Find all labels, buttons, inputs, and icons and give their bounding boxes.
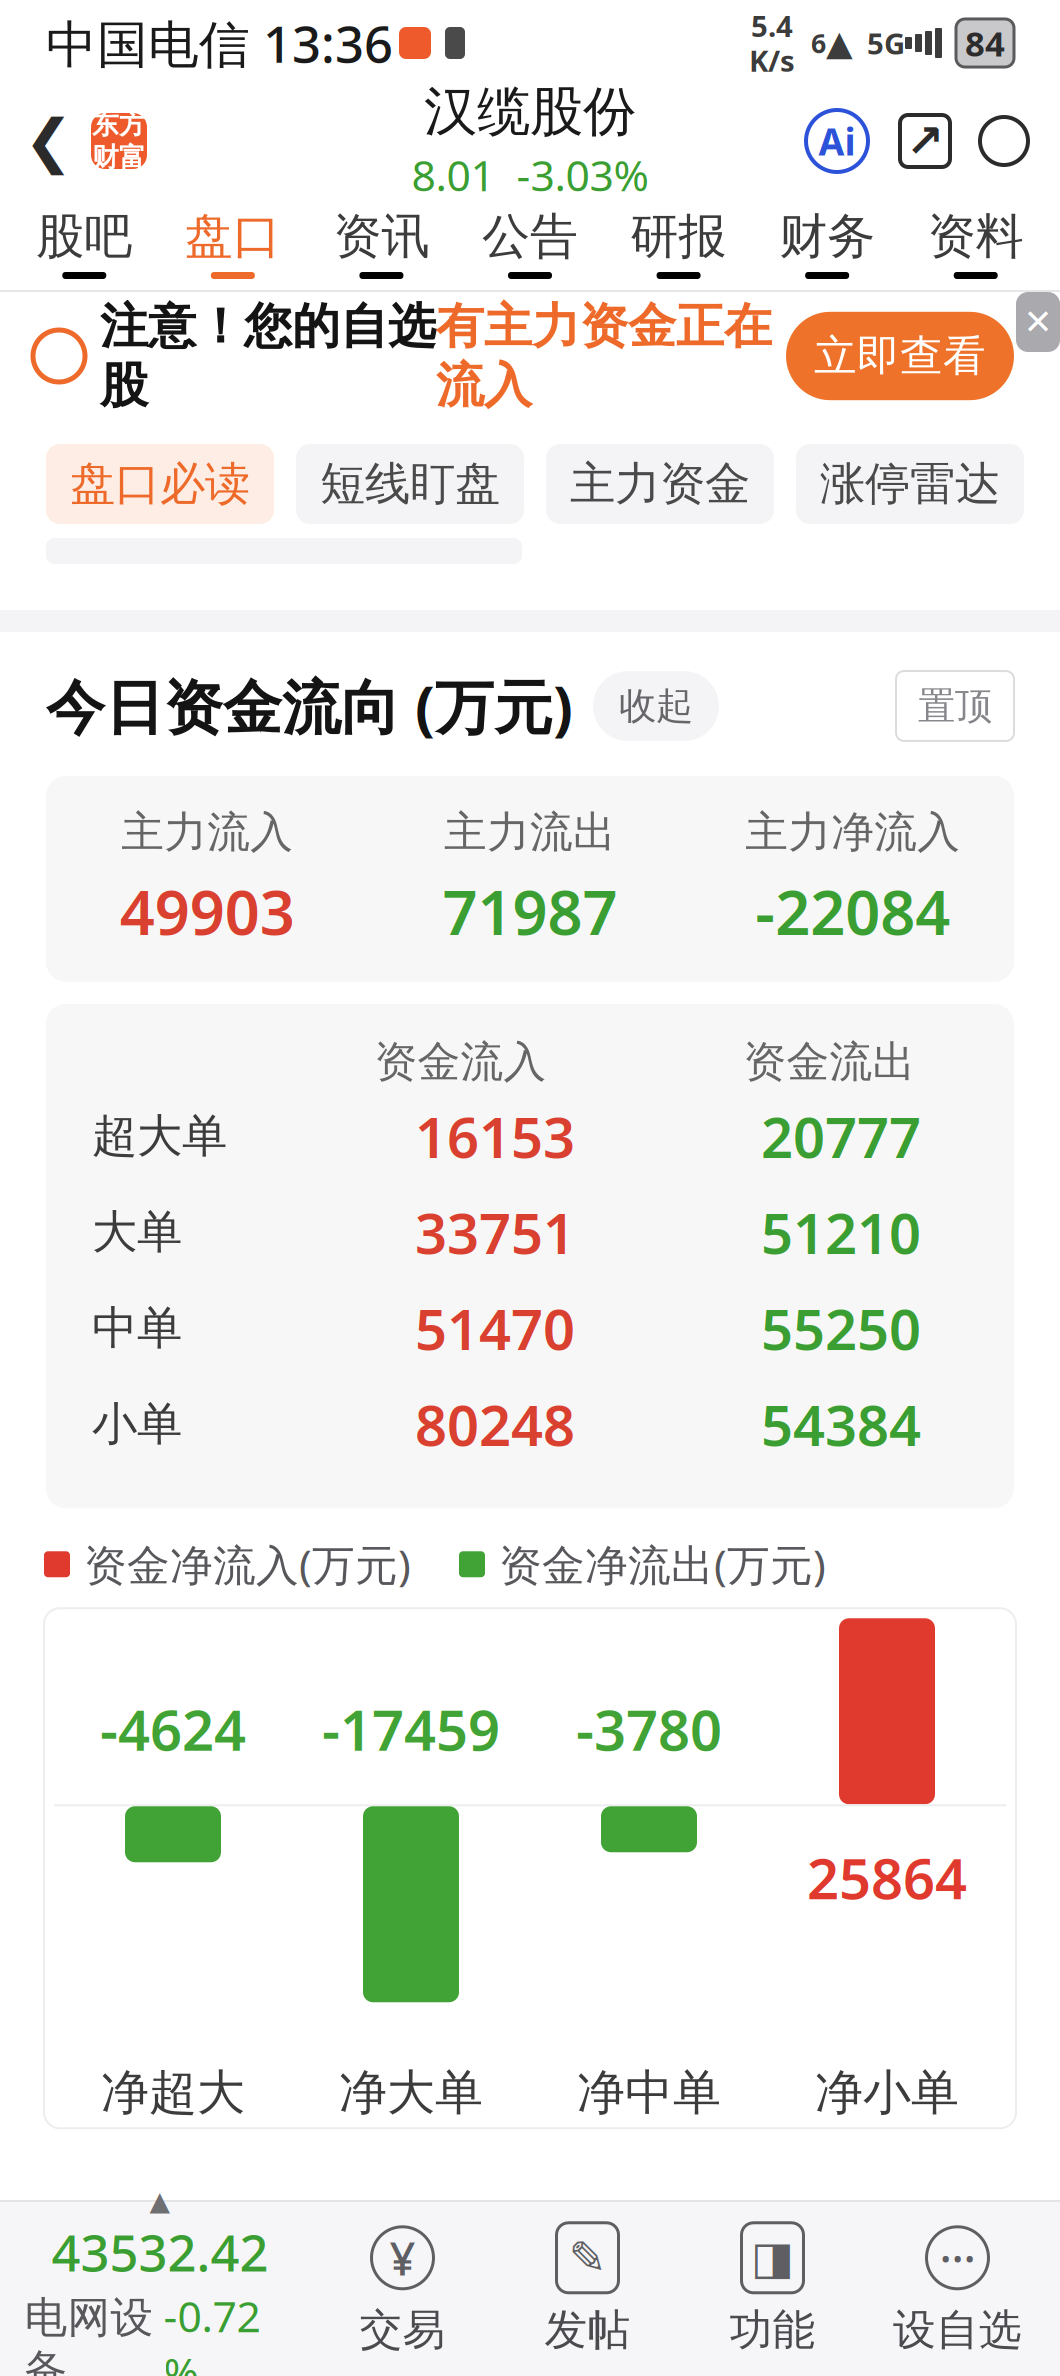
button[interactable]: 资讯 [307, 196, 456, 290]
staticText: 33751 [415, 1195, 575, 1269]
button[interactable]: ¥ [310, 2222, 495, 2356]
staticText: 净小单 [815, 2063, 959, 2122]
staticText: ✎ [568, 2232, 606, 2284]
staticText: 54384 [761, 1387, 921, 1461]
staticText: ↗ [906, 115, 944, 167]
button[interactable]: ▲ [10, 2186, 310, 2376]
staticText: 交易 [359, 2304, 445, 2356]
staticText: 小单 [92, 1396, 182, 1452]
staticText: 资金净流出(万元) [499, 1536, 826, 1593]
staticText: 公告 [482, 207, 578, 266]
button[interactable]: 返回 [0, 86, 171, 196]
staticText: 主力流入 [121, 806, 293, 858]
button[interactable]: 盘口必读 [46, 444, 274, 524]
staticText: 主力资金 [570, 456, 750, 512]
staticText: 49903 [120, 870, 295, 952]
staticText: -17459 [322, 1692, 500, 1766]
staticText: 短线盯盘 [320, 456, 500, 512]
staticText: 20777 [761, 1099, 921, 1173]
staticText: 6 [811, 25, 826, 61]
staticText: 有主力资金正在流入 [436, 297, 772, 415]
staticText: ◨ [751, 2232, 794, 2284]
button[interactable]: 股吧 [10, 196, 159, 290]
staticText: 中单 [92, 1300, 182, 1356]
button[interactable]: 财务 [753, 196, 901, 290]
staticText: 置顶 [918, 683, 992, 729]
staticText: 资金流出 [743, 1036, 915, 1088]
staticText: 净大单 [339, 2063, 483, 2122]
staticText: 资金流入 [374, 1036, 546, 1088]
button[interactable]: ··· [865, 2222, 1050, 2356]
staticText: 净超大 [101, 2063, 245, 2122]
staticText: -3780 [576, 1692, 722, 1766]
button[interactable]: 注意！您的自选股 [0, 292, 1060, 420]
button[interactable]: 短线盯盘 [296, 444, 524, 524]
staticText: 55250 [761, 1291, 921, 1365]
button[interactable]: 主力资金 [546, 444, 774, 524]
staticText: 43532.42 [51, 2218, 268, 2285]
staticText: 净中单 [577, 2063, 721, 2122]
staticText: 发帖 [544, 2304, 630, 2356]
staticText: 资料 [928, 207, 1024, 266]
button[interactable]: ◨ [680, 2222, 865, 2356]
staticText: ❮ [24, 108, 73, 174]
staticText: 5G [867, 23, 905, 62]
staticText: 84 [965, 20, 1005, 66]
staticText: 中国电信 13:36 [46, 9, 393, 77]
staticText: 51210 [761, 1195, 921, 1269]
staticText: 51470 [415, 1291, 575, 1365]
staticText: 25864 [807, 1840, 967, 1915]
button[interactable]: 置顶 [896, 671, 1014, 741]
staticText: ✕ [1023, 302, 1052, 342]
staticText: 汉缆股份 [424, 79, 636, 144]
button[interactable]: 分享 [878, 115, 972, 167]
staticText: 股吧 [36, 207, 132, 266]
button[interactable]: 关闭广告 [1016, 292, 1060, 352]
staticText: 超大单 [92, 1108, 227, 1164]
staticText: ··· [939, 2228, 975, 2288]
staticText: 8.01 [411, 146, 494, 203]
staticText: 收起 [619, 683, 693, 729]
staticText: 研报 [631, 207, 727, 266]
staticText: 盘口必读 [70, 456, 250, 512]
button[interactable]: 搜索 [972, 109, 1060, 173]
button[interactable]: 涨停雷达 [796, 444, 1024, 524]
staticText: ▲ [826, 23, 853, 63]
staticText: ▲ [149, 2186, 170, 2216]
button[interactable]: 公告 [456, 196, 604, 290]
button[interactable]: 盘口 [159, 196, 307, 290]
button[interactable]: 资料 [901, 196, 1050, 290]
button[interactable]: 收起 [593, 671, 719, 741]
staticText: 财富 [92, 141, 146, 174]
staticText: 注意！您的自选股 [100, 297, 436, 415]
staticText: 资讯 [333, 207, 429, 266]
staticText: 71987 [442, 870, 617, 952]
staticText: ¥ [389, 2228, 415, 2288]
staticText: -22084 [755, 870, 950, 952]
staticText: 东方 [92, 108, 146, 141]
button[interactable]: ✎ [495, 2222, 680, 2356]
staticText: 主力流出 [444, 806, 616, 858]
staticText: 16153 [415, 1099, 575, 1173]
staticText: 80248 [415, 1387, 575, 1461]
staticText: -3.03% [516, 146, 648, 203]
staticText: 大单 [92, 1204, 182, 1260]
staticText: 今日资金流向 (万元) [46, 667, 573, 745]
staticText: 电网设备 [24, 2292, 153, 2376]
staticText: 设自选 [893, 2304, 1022, 2356]
staticText: 盘口 [185, 207, 281, 266]
button[interactable]: AI 助手 [796, 110, 878, 172]
staticText: 功能 [729, 2304, 815, 2356]
staticText: 涨停雷达 [820, 456, 1000, 512]
staticText: 主力净流入 [745, 806, 960, 858]
staticText: Ai [818, 116, 855, 166]
staticText: 立即查看 [814, 330, 986, 382]
staticText: K/s [749, 41, 795, 80]
staticText: 财务 [779, 207, 875, 266]
button[interactable]: 研报 [604, 196, 753, 290]
staticText: 资金净流入(万元) [84, 1536, 411, 1593]
staticText: -4624 [100, 1692, 246, 1766]
staticText: 5.4 [751, 6, 793, 45]
staticText: -0.72% [163, 2287, 260, 2376]
